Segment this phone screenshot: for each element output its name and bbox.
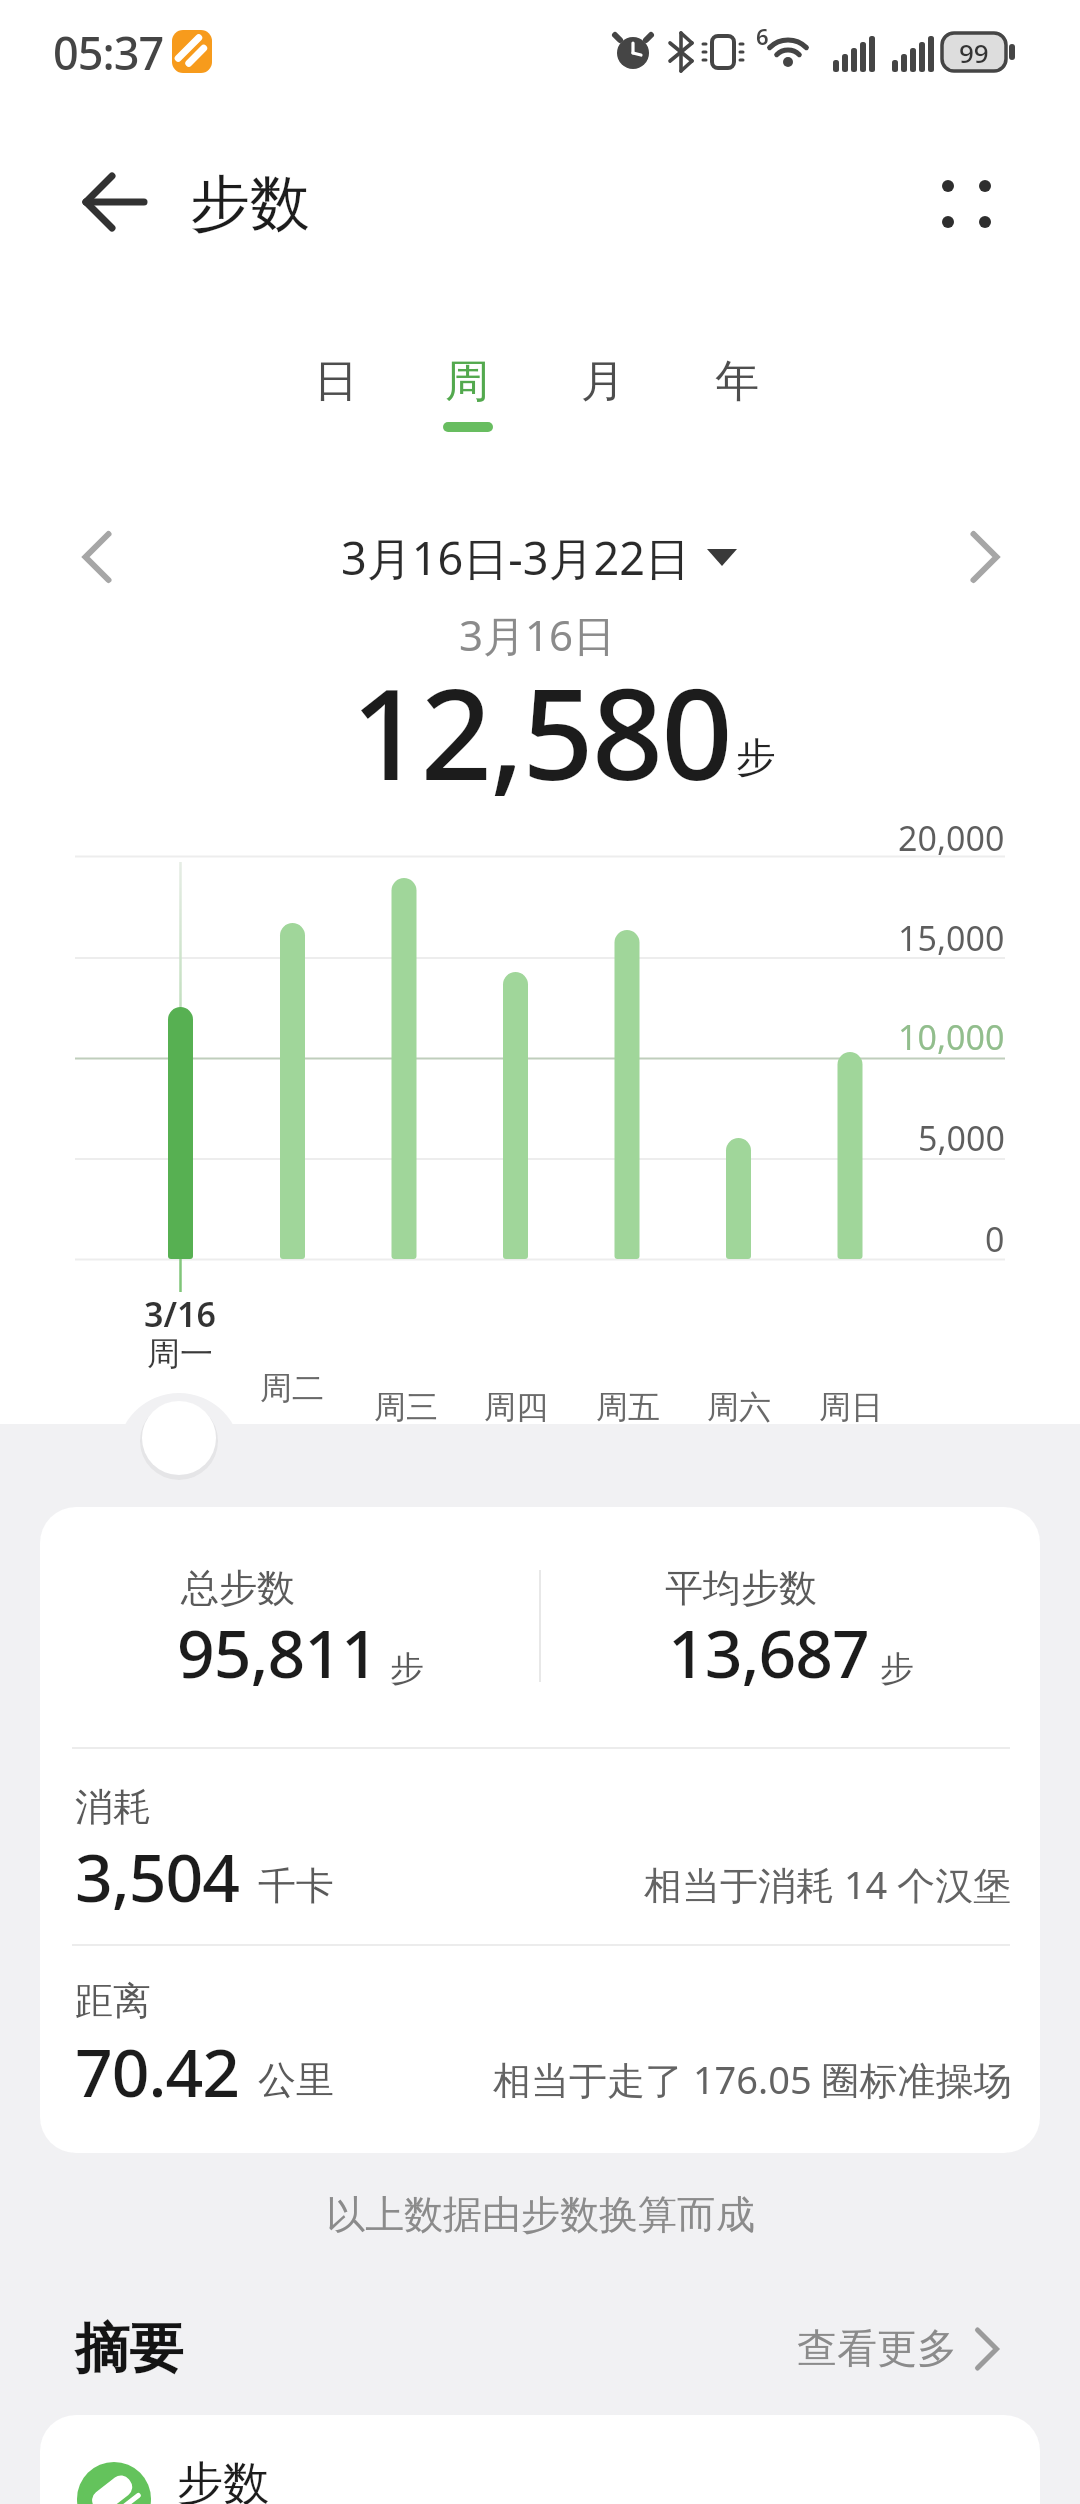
staticText: 12,580 xyxy=(351,646,731,806)
button[interactable]: 3月16日-3月22日 xyxy=(255,517,775,597)
staticText: 95,811 xyxy=(177,1607,378,1697)
staticText: 3/16 xyxy=(144,1291,216,1337)
staticText: 年 xyxy=(715,354,759,409)
button[interactable] xyxy=(40,2415,1040,2504)
staticText: 步 xyxy=(736,732,776,782)
staticText: 相当于走了 176.05 圈标准操场 xyxy=(493,2053,1012,2105)
staticText: 0 xyxy=(985,1216,1005,1262)
staticText: 3月16日-3月22日 xyxy=(341,527,690,588)
staticText: 以上数据由步数换算而成 xyxy=(326,2190,755,2239)
staticText: 月 xyxy=(581,354,625,409)
staticText: 周五 xyxy=(596,1387,660,1427)
staticText: 周 xyxy=(445,354,489,409)
button[interactable] xyxy=(912,158,1020,250)
staticText: 步 xyxy=(880,1647,914,1690)
staticText: 公里 xyxy=(258,2056,334,2104)
button[interactable] xyxy=(56,162,160,242)
button[interactable]: 月 xyxy=(548,338,658,424)
staticText: 距离 xyxy=(75,1977,151,2025)
staticText: 3,504 xyxy=(75,1831,240,1921)
staticText: 15,000 xyxy=(898,915,1005,961)
staticText: 3月16日 xyxy=(459,606,616,663)
staticText: 查看更多 xyxy=(797,2323,957,2373)
staticText: 总步数 xyxy=(181,1564,295,1612)
staticText: 消耗 xyxy=(75,1783,151,1831)
button[interactable] xyxy=(60,520,144,596)
staticText: 平均步数 xyxy=(665,1564,817,1612)
staticText: 周一 xyxy=(147,1333,213,1375)
staticText: 5,000 xyxy=(918,1115,1005,1161)
button[interactable]: 周 xyxy=(412,338,522,424)
staticText: 相当于消耗 14 个汉堡 xyxy=(644,1858,1012,1910)
staticText: 99 xyxy=(959,35,989,70)
staticText: 13,687 xyxy=(668,1607,869,1697)
staticText: 20,000 xyxy=(898,815,1005,861)
staticText: 70.42 xyxy=(75,2026,239,2116)
button[interactable] xyxy=(944,520,1028,596)
staticText: 周日 xyxy=(819,1387,883,1427)
staticText: 周四 xyxy=(484,1387,548,1427)
staticText: 周二 xyxy=(260,1368,324,1408)
staticText: 步数 xyxy=(177,2455,269,2504)
staticText: 6 xyxy=(756,21,769,51)
staticText: 周三 xyxy=(374,1387,438,1427)
staticText: 日 xyxy=(314,354,358,409)
button[interactable]: 年 xyxy=(682,338,792,424)
button[interactable]: 日 xyxy=(281,338,391,424)
staticText: 05:37 xyxy=(53,22,164,82)
button[interactable] xyxy=(40,1507,1040,2153)
staticText: 周六 xyxy=(707,1387,771,1427)
staticText: 摘要 xyxy=(75,2315,183,2383)
staticText: 千卡 xyxy=(258,1862,334,1910)
staticText: 10,000 xyxy=(898,1014,1005,1060)
staticText: 步 xyxy=(390,1647,424,1690)
staticText: 步数 xyxy=(190,166,310,242)
button[interactable] xyxy=(756,2308,1016,2390)
